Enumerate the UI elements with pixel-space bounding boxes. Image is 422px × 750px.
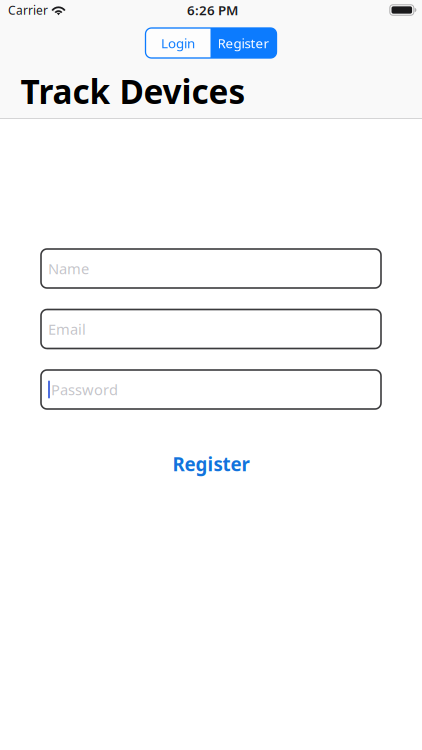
staticText: Carrier	[8, 2, 48, 18]
button[interactable]: Email	[41, 309, 381, 348]
staticText: Password	[51, 380, 118, 399]
staticText: Register	[217, 34, 269, 52]
staticText: Login	[161, 34, 195, 52]
staticText: Email	[48, 319, 86, 339]
staticText: Name	[48, 259, 89, 278]
button[interactable]: Login	[145, 28, 210, 58]
button[interactable]: Password	[41, 370, 381, 409]
staticText: Track Devices	[20, 69, 245, 113]
staticText: 6:26 PM	[187, 1, 238, 19]
button[interactable]: Register	[210, 28, 276, 58]
staticText: Register	[172, 452, 249, 476]
button[interactable]: Name	[41, 249, 381, 288]
button[interactable]: Register	[41, 447, 381, 481]
